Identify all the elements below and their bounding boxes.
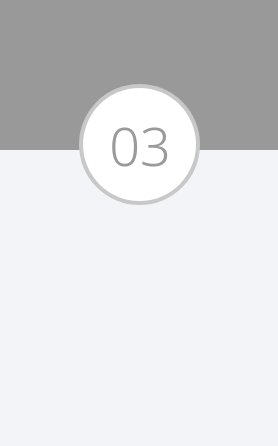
button[interactable]: Step 03 badge <box>79 84 200 205</box>
staticText: 03 <box>109 108 171 182</box>
